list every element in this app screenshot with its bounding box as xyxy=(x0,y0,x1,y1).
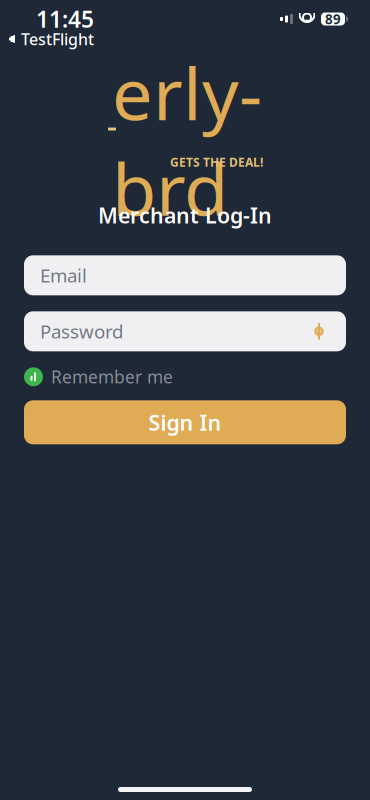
button[interactable]: Sign In xyxy=(24,400,346,444)
staticText: 89 xyxy=(325,10,341,28)
button[interactable]: Show password xyxy=(308,320,330,342)
staticText: erlybrd xyxy=(112,44,262,236)
staticText: Password xyxy=(40,319,123,344)
staticText: GETS THE DEAL! xyxy=(170,154,263,170)
button[interactable]: Remember me xyxy=(24,365,173,388)
staticText: Email xyxy=(40,263,87,288)
staticText: 11:45 xyxy=(36,4,94,34)
staticText: Sign In xyxy=(148,408,221,436)
staticText: TestFlight xyxy=(21,28,94,50)
staticText: Merchant Log-In xyxy=(98,201,272,229)
staticText: Remember me xyxy=(51,365,173,388)
